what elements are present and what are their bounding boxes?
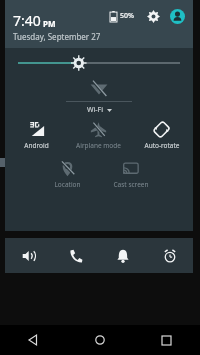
staticText: 50% bbox=[120, 11, 134, 21]
button[interactable]: Brightness bbox=[5, 48, 193, 78]
staticText: Airplane mode bbox=[76, 141, 121, 150]
staticText: Wi-Fi bbox=[87, 105, 104, 115]
button[interactable]: Alarm bbox=[146, 238, 193, 273]
staticText: Android bbox=[24, 141, 49, 150]
button[interactable]: Auto-rotate bbox=[130, 119, 193, 152]
button[interactable]: Volume bbox=[5, 238, 52, 273]
button[interactable]: Recent apps bbox=[133, 325, 200, 355]
button[interactable]: Wi-Fi bbox=[5, 78, 193, 115]
staticText: 7:40 bbox=[13, 11, 41, 30]
button[interactable]: Cast screen bbox=[99, 158, 162, 191]
staticText: Location bbox=[54, 180, 81, 189]
button[interactable]: Location bbox=[36, 158, 99, 191]
staticText: Tuesday, September 27 bbox=[13, 31, 101, 42]
staticText: Auto-rotate bbox=[144, 141, 180, 150]
staticText: Cast screen bbox=[113, 180, 149, 189]
button[interactable]: Back bbox=[0, 325, 66, 355]
button[interactable]: Airplane mode bbox=[67, 119, 130, 152]
button[interactable]: Android bbox=[5, 119, 67, 152]
button[interactable]: Notifications bbox=[99, 238, 146, 273]
button[interactable]: User profile bbox=[167, 6, 187, 26]
button[interactable]: Phone bbox=[52, 238, 99, 273]
button[interactable]: Home bbox=[66, 325, 133, 355]
button[interactable]: Volume bbox=[5, 238, 193, 273]
button[interactable]: Settings bbox=[143, 6, 163, 26]
staticText: PM bbox=[43, 18, 56, 29]
